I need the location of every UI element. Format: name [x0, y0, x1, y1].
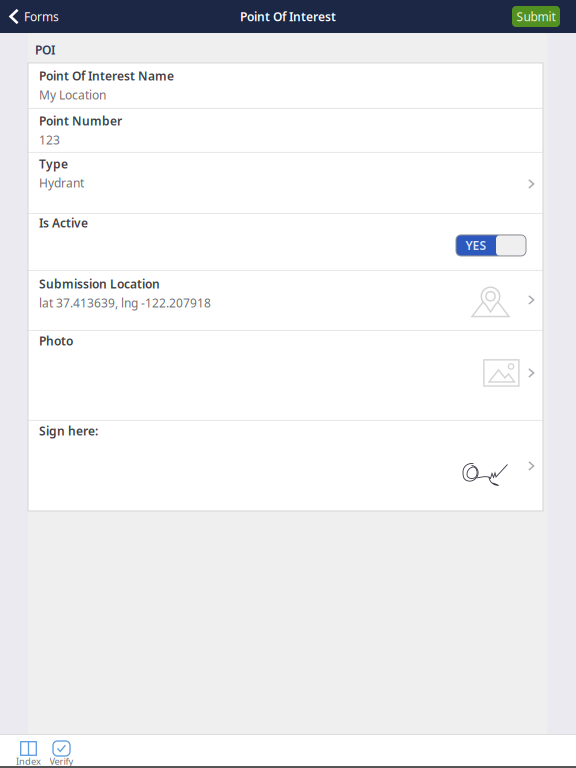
button[interactable]: Submit	[512, 6, 560, 27]
staticText: lat 37.413639, lng -122.207918	[39, 295, 211, 311]
button[interactable]: Type	[28, 153, 543, 213]
staticText: Submit	[516, 8, 555, 24]
staticText: 123	[39, 132, 60, 148]
button[interactable]: Submission Location	[28, 271, 543, 330]
staticText: Type	[39, 156, 68, 172]
staticText: Is Active	[39, 215, 88, 231]
staticText: Sign here:	[39, 423, 98, 439]
staticText: Hydrant	[39, 175, 84, 191]
staticText: Point Of Interest Name	[39, 68, 174, 84]
button[interactable]: Index	[12, 735, 45, 766]
staticText: POI	[35, 42, 55, 58]
staticText: Index	[16, 755, 41, 767]
staticText: Point Number	[39, 113, 122, 129]
staticText: Point Of Interest	[240, 8, 336, 24]
staticText: Submission Location	[39, 276, 160, 292]
button[interactable]: Verify	[45, 735, 78, 766]
button[interactable]: Is Active	[456, 235, 526, 256]
button[interactable]: Back to Forms	[0, 0, 69, 33]
staticText: YES	[465, 237, 486, 253]
staticText: Verify	[49, 755, 73, 767]
button[interactable]: Photo	[28, 331, 543, 420]
staticText: My Location	[39, 87, 106, 103]
staticText: Forms	[24, 8, 59, 24]
button[interactable]: Sign here:	[28, 421, 543, 511]
staticText: Photo	[39, 333, 73, 349]
